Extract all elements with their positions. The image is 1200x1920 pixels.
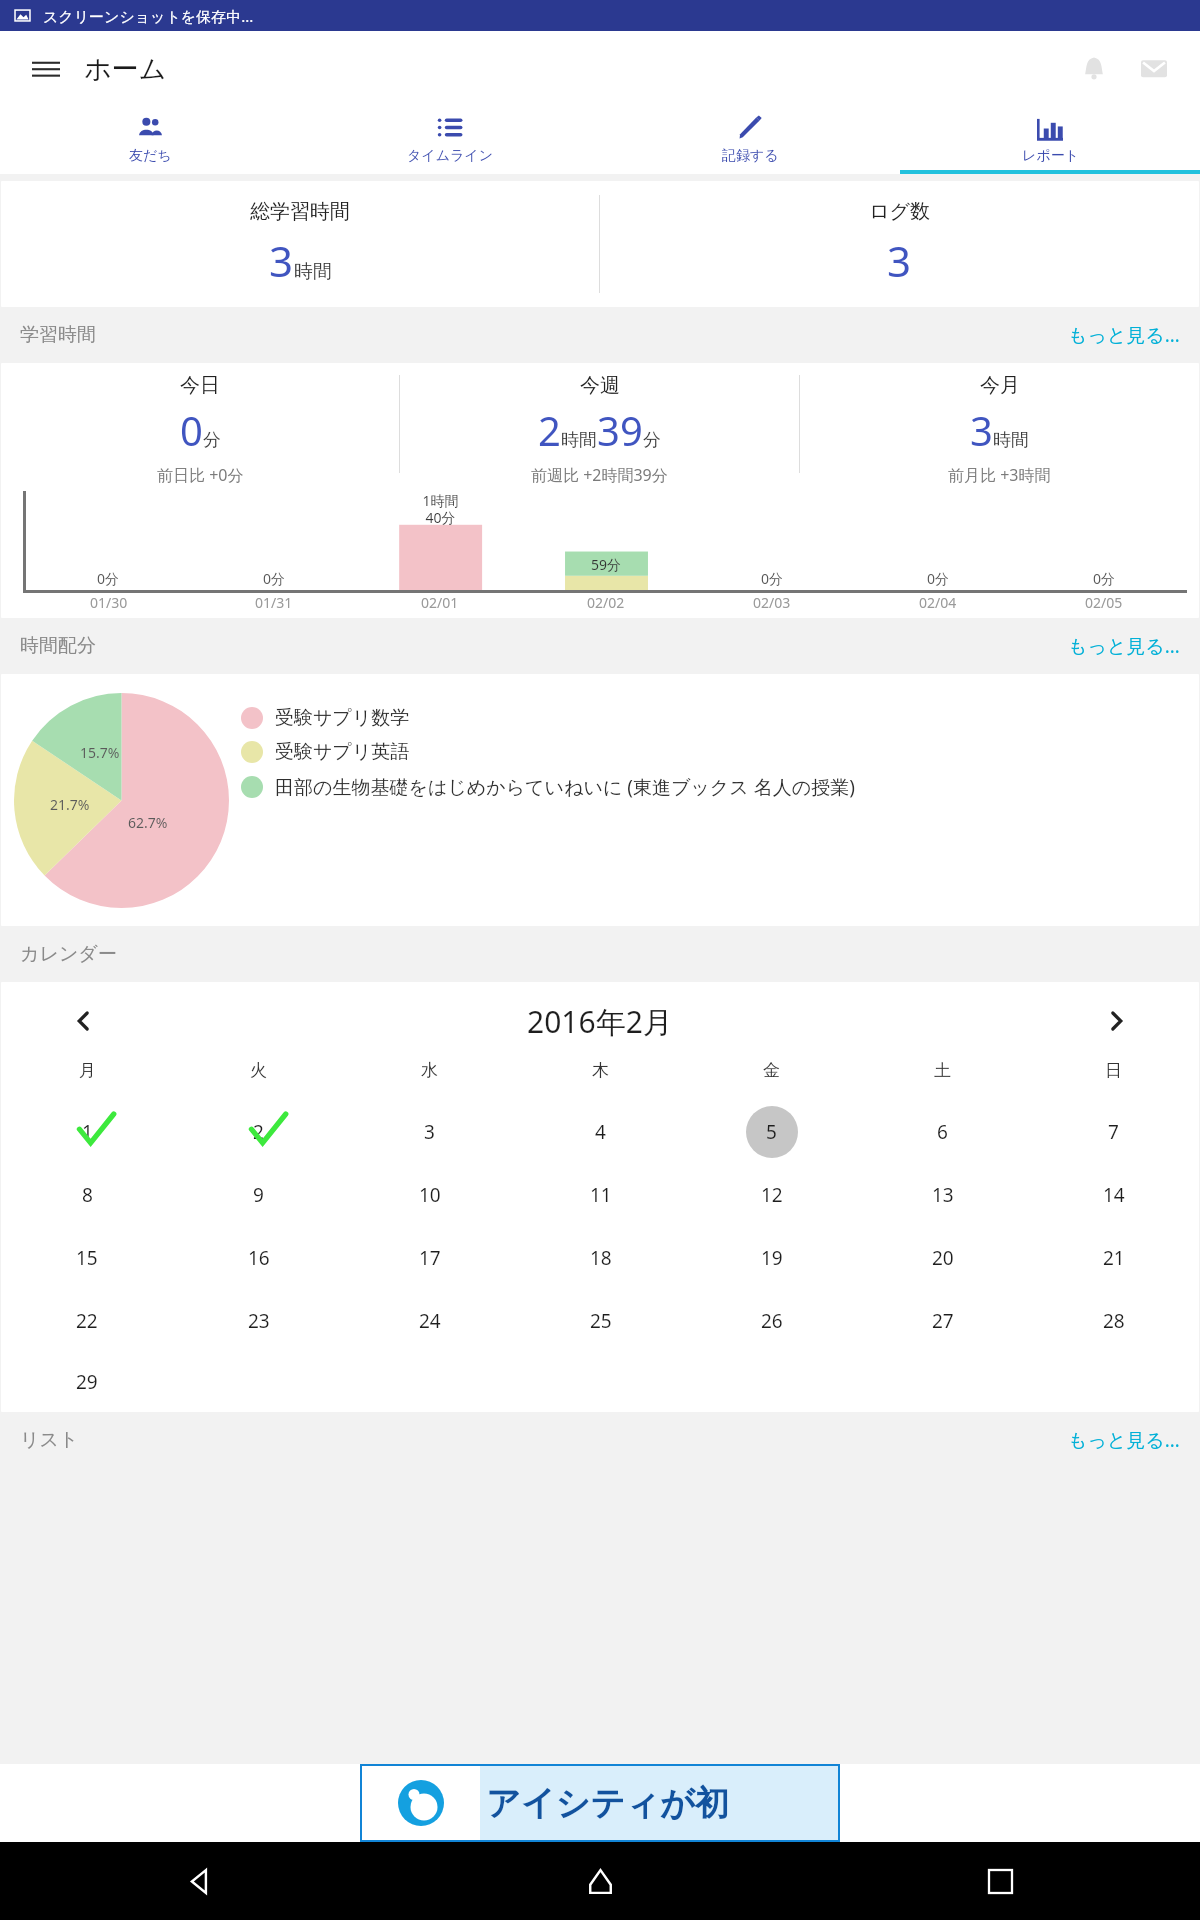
staticText: 今日 (180, 373, 220, 398)
button[interactable]: タイムライン (300, 106, 600, 174)
button[interactable]: 21 (1028, 1226, 1199, 1289)
staticText: 金 (763, 1060, 780, 1081)
staticText: 26 (761, 1308, 783, 1334)
staticText: 8 (82, 1182, 93, 1208)
button[interactable]: 20 (857, 1226, 1028, 1289)
staticText: 3 (269, 232, 294, 289)
staticText: 28 (1103, 1308, 1125, 1334)
staticText: アイシティが初 (486, 1782, 729, 1825)
button[interactable]: アイシティが初 (362, 1766, 838, 1840)
staticText: もっと見る… (1068, 633, 1180, 659)
button[interactable]: Previous month (61, 998, 107, 1044)
staticText: 2 (538, 403, 561, 457)
button[interactable]: Menu (22, 45, 70, 93)
button[interactable]: 28 (1028, 1289, 1199, 1352)
staticText: 分 (203, 429, 221, 452)
button[interactable]: 7 (1028, 1100, 1199, 1163)
staticText: 21 (1103, 1245, 1125, 1271)
button[interactable]: 15 (1, 1226, 173, 1289)
button[interactable]: もっと見る… (1068, 1427, 1180, 1453)
button[interactable]: 23 (173, 1289, 344, 1352)
staticText: 17 (419, 1245, 441, 1271)
staticText: 田部の生物基礎をはじめからていねいに (東進ブックス 名人の授業) (275, 774, 855, 800)
button[interactable]: もっと見る… (1068, 633, 1180, 659)
staticText: 18 (590, 1245, 612, 1271)
button[interactable]: 1 (1, 1100, 173, 1163)
staticText: 0 (180, 403, 203, 457)
button[interactable]: 4 (515, 1100, 686, 1163)
staticText: 59分 (591, 555, 622, 574)
staticText: 25 (590, 1308, 612, 1334)
button[interactable]: Next month (1093, 998, 1139, 1044)
staticText: 22 (76, 1308, 98, 1334)
button[interactable]: 24 (344, 1289, 515, 1352)
staticText: 5 (766, 1119, 777, 1145)
button[interactable]: 29 (1, 1352, 173, 1412)
button[interactable]: 17 (344, 1226, 515, 1289)
button[interactable]: 記録する (600, 106, 900, 174)
button[interactable]: 14 (1028, 1163, 1199, 1226)
staticText: 11 (590, 1182, 612, 1208)
button[interactable]: Home (572, 1853, 628, 1909)
staticText: 0分 (761, 569, 784, 588)
button[interactable]: 26 (686, 1289, 857, 1352)
staticText: 7 (1108, 1119, 1119, 1145)
staticText: 2016年2月 (527, 1001, 673, 1042)
staticText: 24 (419, 1308, 441, 1334)
button[interactable]: Recents (972, 1853, 1028, 1909)
staticText: ログ数 (869, 199, 930, 224)
staticText: 月 (79, 1060, 96, 1081)
staticText: 0分 (263, 569, 286, 588)
button[interactable]: レポート (900, 106, 1200, 174)
button[interactable]: 25 (515, 1289, 686, 1352)
button[interactable]: 9 (173, 1163, 344, 1226)
button[interactable]: 19 (686, 1226, 857, 1289)
button[interactable]: 3 (344, 1100, 515, 1163)
staticText: 23 (248, 1308, 270, 1334)
staticText: 今週 (580, 373, 620, 398)
button[interactable]: 2 (173, 1100, 344, 1163)
staticText: 前日比 +0分 (157, 464, 244, 485)
staticText: 6 (937, 1119, 948, 1145)
button[interactable]: 10 (344, 1163, 515, 1226)
button[interactable]: Notifications (1064, 39, 1124, 99)
button[interactable]: 27 (857, 1289, 1028, 1352)
staticText: 火 (250, 1060, 267, 1081)
button[interactable]: Back (172, 1853, 228, 1909)
staticText: 19 (761, 1245, 783, 1271)
staticText: 29 (76, 1369, 98, 1395)
button[interactable]: 12 (686, 1163, 857, 1226)
button[interactable]: 18 (515, 1226, 686, 1289)
staticText: 0分 (927, 569, 950, 588)
button[interactable]: Messages (1124, 39, 1184, 99)
staticText: ホーム (84, 52, 167, 86)
staticText: 2 (253, 1119, 264, 1145)
staticText: 27 (932, 1308, 954, 1334)
staticText: 記録する (722, 147, 779, 165)
staticText: 62.7% (128, 813, 168, 832)
button[interactable]: 22 (1, 1289, 173, 1352)
button[interactable]: 8 (1, 1163, 173, 1226)
button[interactable]: 16 (173, 1226, 344, 1289)
staticText: 3 (887, 232, 912, 289)
button[interactable]: 11 (515, 1163, 686, 1226)
staticText: 01/31 (255, 593, 293, 612)
button[interactable]: 6 (857, 1100, 1028, 1163)
staticText: もっと見る… (1068, 322, 1180, 348)
staticText: 14 (1103, 1182, 1125, 1208)
button[interactable]: もっと見る… (1068, 322, 1180, 348)
staticText: 16 (248, 1245, 270, 1271)
staticText: 01/30 (90, 593, 128, 612)
staticText: 13 (932, 1182, 954, 1208)
button[interactable]: 13 (857, 1163, 1028, 1226)
staticText: スクリーンショットを保存中... (43, 6, 254, 26)
button[interactable]: 5 (686, 1100, 857, 1163)
button[interactable]: 友だち (0, 106, 300, 174)
staticText: リスト (20, 1428, 79, 1452)
